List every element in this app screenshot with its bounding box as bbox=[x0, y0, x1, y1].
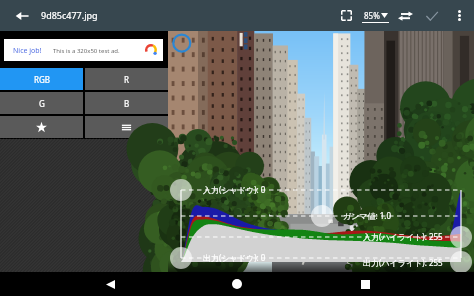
button[interactable]: Home bbox=[219, 272, 255, 296]
button[interactable]: Option bbox=[85, 116, 168, 138]
button[interactable]: More options bbox=[447, 1, 471, 30]
staticText: This is a 320x50 test ad. bbox=[53, 47, 120, 55]
button[interactable]: Back bbox=[92, 272, 128, 296]
button[interactable]: R bbox=[85, 68, 168, 90]
button[interactable]: Fit to screen bbox=[332, 1, 360, 30]
staticText: R bbox=[124, 74, 129, 85]
button[interactable]: 85% bbox=[362, 3, 392, 27]
staticText: 9d85c477.jpg bbox=[41, 9, 98, 21]
button[interactable]: B bbox=[85, 92, 168, 114]
staticText: B bbox=[124, 98, 130, 109]
button[interactable]: Compare bbox=[392, 1, 418, 30]
staticText: 出力(シャドウ): 0 bbox=[203, 252, 266, 263]
button[interactable]: Option bbox=[0, 116, 83, 138]
staticText: RGB bbox=[34, 74, 50, 85]
button[interactable]: RGB bbox=[0, 68, 83, 90]
staticText: Nice job! bbox=[13, 46, 42, 56]
button[interactable]: Nice job! bbox=[4, 39, 163, 61]
button[interactable]: Recent apps bbox=[347, 272, 383, 296]
staticText: 入力(シャドウ): 0 bbox=[203, 184, 266, 195]
button[interactable]: G bbox=[0, 92, 83, 114]
staticText: 85% bbox=[364, 10, 380, 21]
staticText: 入力(ハイライト): 255 bbox=[363, 231, 443, 242]
staticText: 出力(ハイライト): 255 bbox=[363, 257, 443, 268]
staticText: G bbox=[39, 98, 45, 109]
button[interactable]: Back bbox=[6, 1, 38, 30]
staticText: ガンマ値: 1.0 bbox=[343, 210, 392, 221]
button[interactable]: Apply bbox=[419, 1, 445, 30]
